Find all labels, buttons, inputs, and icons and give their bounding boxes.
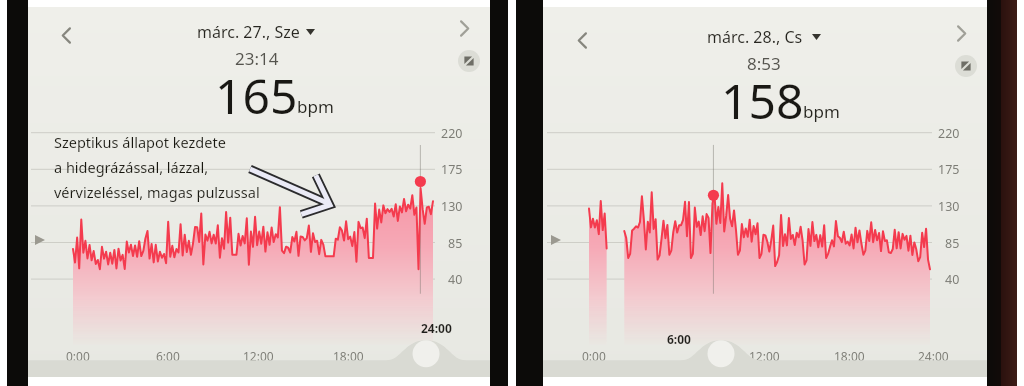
staticText: 220 <box>441 125 463 142</box>
staticText: 165 <box>215 63 298 128</box>
staticText: 130 <box>938 198 960 215</box>
staticText: 175 <box>441 161 463 178</box>
staticText: 0:00 <box>66 348 90 364</box>
staticText: 24:00 <box>918 348 949 364</box>
button[interactable]: Chart options <box>458 50 480 72</box>
staticText: 130 <box>441 198 463 215</box>
button[interactable]: Navigation bar <box>27 337 491 377</box>
button[interactable]: márc. 28., Cs <box>707 26 803 48</box>
staticText: 18:00 <box>834 348 865 364</box>
staticText: 24:00 <box>421 320 452 336</box>
staticText: 158 <box>721 68 804 133</box>
button[interactable]: Previous day <box>567 25 597 55</box>
staticText: 8:53 <box>747 52 781 75</box>
staticText: márc. 27., Sze <box>197 21 300 43</box>
staticText: 12:00 <box>243 348 274 364</box>
staticText: 6:00 <box>667 331 691 347</box>
staticText: 175 <box>938 161 960 178</box>
staticText: 6:00 <box>156 348 180 364</box>
button[interactable]: Navigation bar <box>543 337 988 377</box>
staticText: 40 <box>448 271 463 288</box>
staticText: 85 <box>945 235 960 252</box>
button[interactable]: Chart options <box>955 55 977 77</box>
staticText: 85 <box>448 235 463 252</box>
button[interactable]: márc. 27., Sze <box>197 21 300 43</box>
staticText: 23:14 <box>235 47 279 70</box>
staticText: bpm <box>297 95 334 118</box>
staticText: bpm <box>803 100 840 123</box>
button[interactable]: Next day <box>946 18 976 48</box>
staticText: 220 <box>938 125 960 142</box>
staticText: 0:00 <box>582 348 606 364</box>
staticText: 12:00 <box>749 348 780 364</box>
staticText: 18:00 <box>333 348 364 364</box>
staticText: márc. 28., Cs <box>707 26 803 48</box>
button[interactable]: Next day <box>449 13 479 43</box>
staticText: Szeptikus állapot kezdete a hidegrázássa… <box>54 132 260 202</box>
staticText: 40 <box>945 271 960 288</box>
button[interactable]: Previous day <box>51 20 81 50</box>
